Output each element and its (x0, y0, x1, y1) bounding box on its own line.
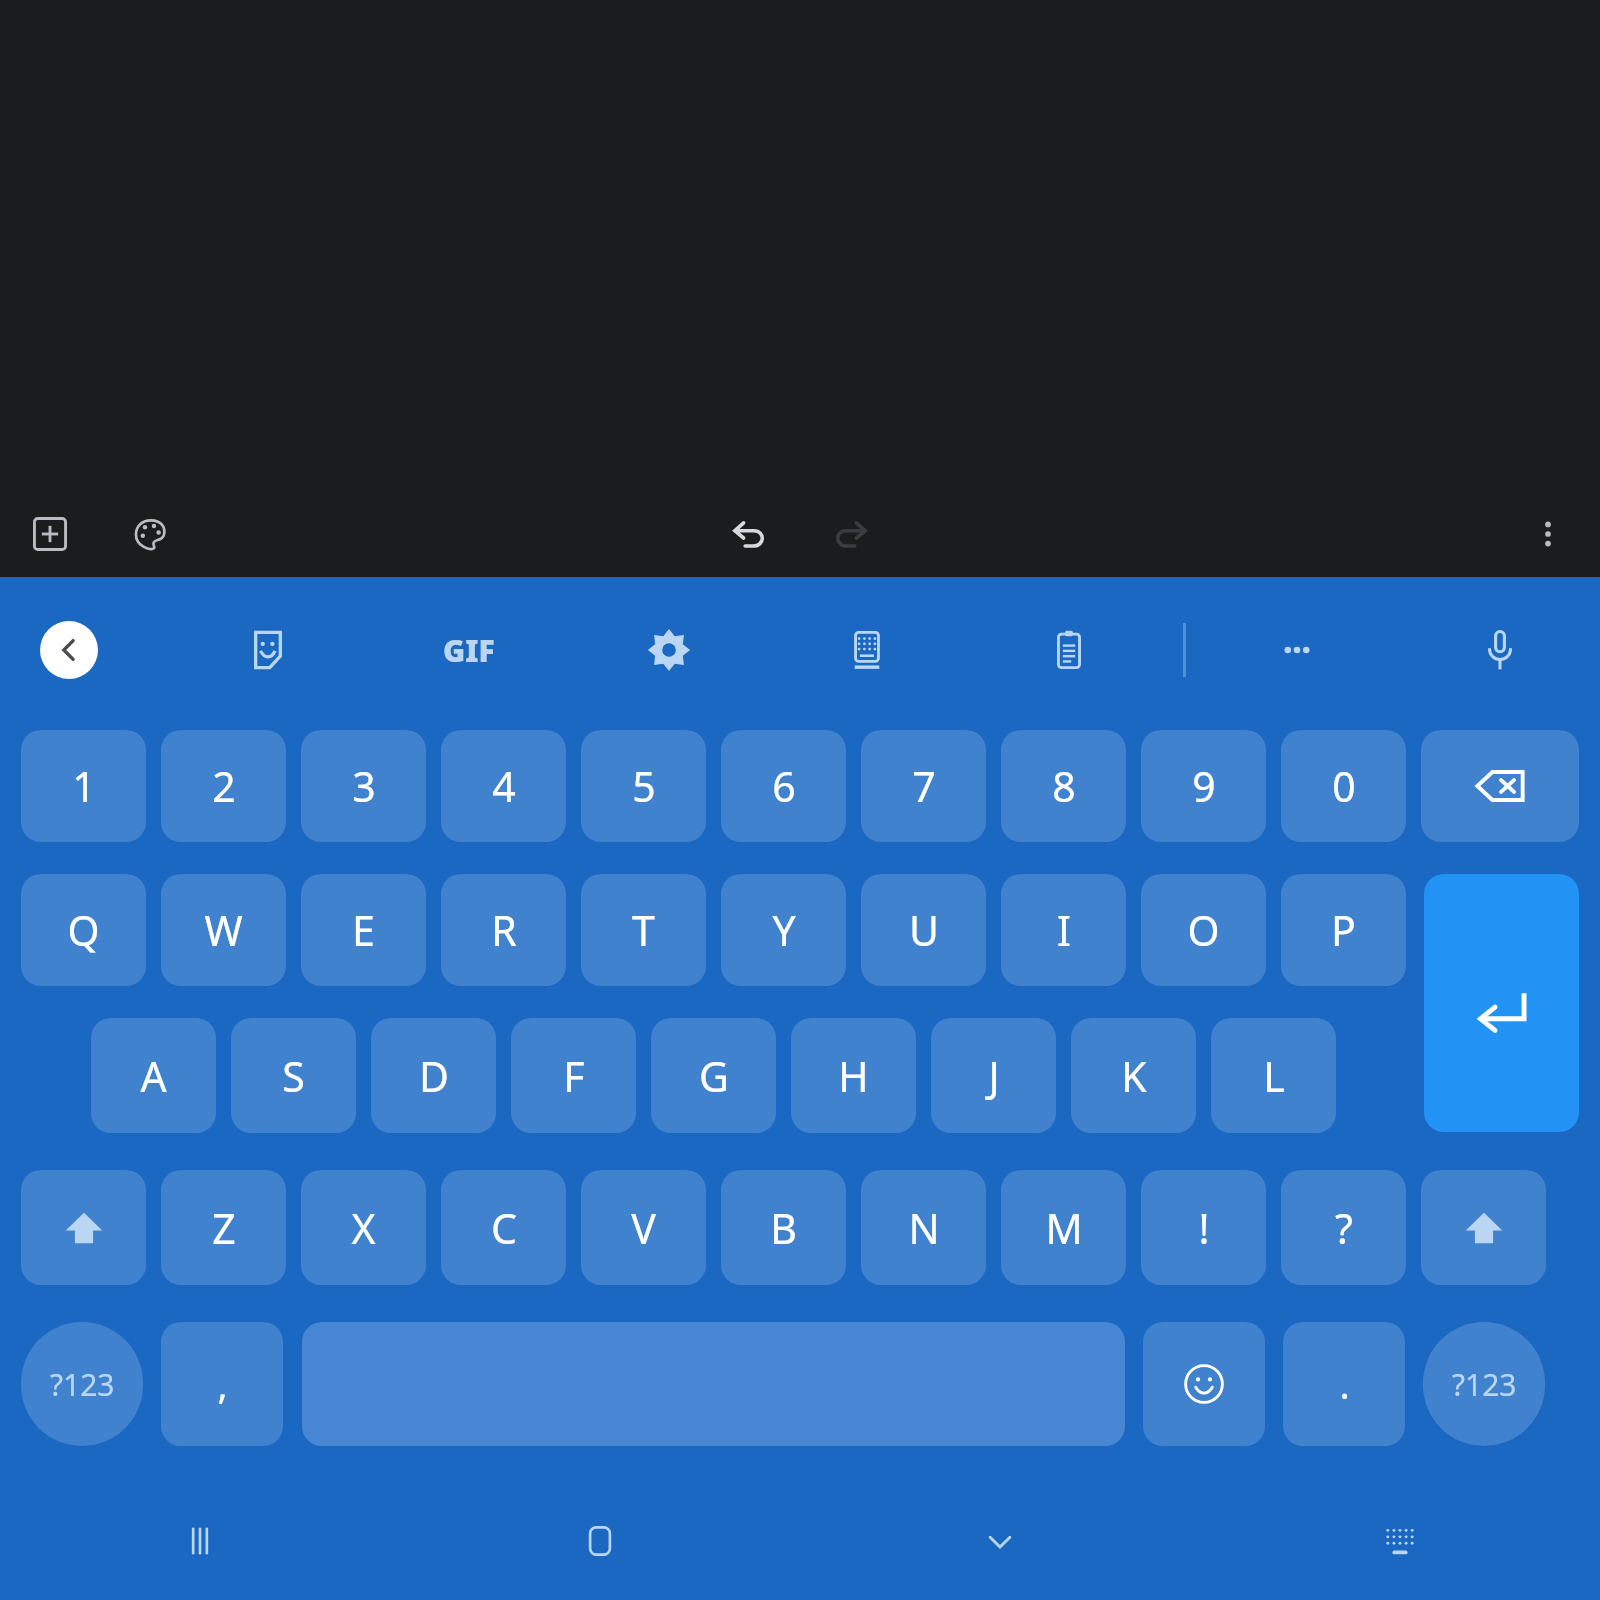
button[interactable]: T (581, 874, 706, 986)
staticText: . (1339, 1358, 1350, 1410)
staticText: GIF (443, 630, 495, 671)
staticText: 3 (352, 758, 376, 814)
staticText: Y (772, 902, 796, 958)
button[interactable]: Settings (620, 601, 718, 699)
button[interactable]: More options (1514, 500, 1582, 568)
staticText: D (419, 1048, 449, 1104)
button[interactable]: , (161, 1322, 283, 1446)
button[interactable]: Shift (21, 1170, 146, 1285)
button[interactable]: Backspace (1421, 730, 1579, 842)
staticText: 7 (912, 758, 936, 814)
button[interactable]: Voice input (1451, 601, 1549, 699)
button[interactable]: 0 (1281, 730, 1406, 842)
button[interactable]: Theme (116, 500, 184, 568)
button[interactable]: R (441, 874, 566, 986)
staticText: M (1045, 1200, 1083, 1256)
button[interactable]: 9 (1141, 730, 1266, 842)
button[interactable]: K (1071, 1018, 1196, 1133)
button[interactable]: X (301, 1170, 426, 1285)
button[interactable]: GIF (420, 601, 518, 699)
button[interactable]: 2 (161, 730, 286, 842)
button[interactable]: Add page (16, 500, 84, 568)
button[interactable]: 3 (301, 730, 426, 842)
button[interactable]: ! (1141, 1170, 1266, 1285)
button[interactable]: ? (1281, 1170, 1406, 1285)
staticText: E (352, 902, 375, 958)
button[interactable]: E (301, 874, 426, 986)
button[interactable]: J (931, 1018, 1056, 1133)
staticText: C (491, 1200, 517, 1256)
button[interactable]: B (721, 1170, 846, 1285)
button[interactable]: F (511, 1018, 636, 1133)
button[interactable]: Enter (1424, 874, 1579, 1132)
button[interactable]: ?123 (1423, 1322, 1545, 1446)
button[interactable]: 8 (1001, 730, 1126, 842)
button[interactable]: S (231, 1018, 356, 1133)
button[interactable]: Z (161, 1170, 286, 1285)
staticText: F (563, 1048, 585, 1104)
staticText: U (909, 902, 939, 958)
button[interactable]: Keyboard modes (818, 601, 916, 699)
button[interactable]: Switch keyboard (1200, 1482, 1600, 1600)
staticText: K (1121, 1048, 1147, 1104)
button[interactable]: Emoji (1143, 1322, 1265, 1446)
staticText: P (1331, 902, 1356, 958)
staticText: N (908, 1200, 940, 1256)
button[interactable]: O (1141, 874, 1266, 986)
button[interactable]: Expand toolbar (40, 621, 98, 679)
button[interactable]: 1 (21, 730, 146, 842)
staticText: 5 (632, 758, 656, 814)
button[interactable]: 6 (721, 730, 846, 842)
staticText: ! (1198, 1200, 1210, 1256)
button[interactable]: M (1001, 1170, 1126, 1285)
button[interactable]: V (581, 1170, 706, 1285)
staticText: 6 (772, 758, 796, 814)
staticText: 9 (1192, 758, 1216, 814)
button[interactable]: Hide keyboard (800, 1482, 1200, 1600)
button[interactable]: 5 (581, 730, 706, 842)
button[interactable]: H (791, 1018, 916, 1133)
staticText: L (1263, 1048, 1285, 1104)
button[interactable]: . (1283, 1322, 1405, 1446)
button[interactable]: Q (21, 874, 146, 986)
button[interactable]: 4 (441, 730, 566, 842)
button[interactable]: Home (400, 1482, 800, 1600)
button[interactable]: P (1281, 874, 1406, 986)
button[interactable]: Undo (714, 498, 786, 570)
button[interactable]: More (1248, 601, 1346, 699)
staticText: A (140, 1048, 167, 1104)
button[interactable]: Clipboard (1020, 601, 1118, 699)
staticText: ?123 (50, 1364, 115, 1405)
button[interactable]: Y (721, 874, 846, 986)
staticText: B (770, 1200, 797, 1256)
staticText: ? (1335, 1200, 1353, 1256)
staticText: 2 (212, 758, 236, 814)
button[interactable]: ?123 (21, 1322, 143, 1446)
button[interactable]: 7 (861, 730, 986, 842)
staticText: 1 (72, 758, 96, 814)
button[interactable]: A (91, 1018, 216, 1133)
button[interactable]: D (371, 1018, 496, 1133)
button[interactable]: C (441, 1170, 566, 1285)
staticText: S (282, 1048, 305, 1104)
button[interactable]: Redo (814, 498, 886, 570)
staticText: 8 (1052, 758, 1076, 814)
staticText: H (838, 1048, 869, 1104)
button[interactable]: U (861, 874, 986, 986)
staticText: ?123 (1452, 1364, 1517, 1405)
button[interactable]: N (861, 1170, 986, 1285)
button[interactable]: I (1001, 874, 1126, 986)
button[interactable]: Shift (1421, 1170, 1546, 1285)
button[interactable]: Stickers (219, 601, 317, 699)
button[interactable]: L (1211, 1018, 1336, 1133)
staticText: Z (212, 1200, 236, 1256)
button[interactable]: W (161, 874, 286, 986)
staticText: , (217, 1358, 228, 1410)
staticText: 4 (492, 758, 516, 814)
button[interactable]: G (651, 1018, 776, 1133)
button[interactable]: Recents (0, 1482, 400, 1600)
staticText: G (699, 1048, 729, 1104)
staticText: V (631, 1200, 656, 1256)
staticText: Q (67, 902, 100, 958)
